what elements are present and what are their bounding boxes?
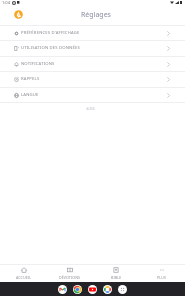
button[interactable]: Chrome [73,285,82,294]
staticText: NOTIFICATIONS [21,61,55,67]
button[interactable]: BIBLE [93,265,139,282]
staticText: DÉVOTIONS [59,275,81,280]
button[interactable]: All apps [118,285,127,294]
staticText: ACCUEIL [16,275,32,280]
staticText: UTILISATION DES DONNÉES [21,45,80,51]
button[interactable]: Logo [14,10,23,19]
button[interactable]: Photos [103,285,112,294]
staticText: LANGUE [21,92,39,98]
button[interactable]: PRÉFÉRENCES D'AFFICHAGE [0,26,185,40]
button[interactable]: YouTube [88,285,97,294]
staticText: BIBLE [111,275,122,280]
button[interactable]: DÉVOTIONS [47,265,93,282]
staticText: 1:04 [2,0,10,5]
staticText: PRÉFÉRENCES D'AFFICHAGE [21,30,80,36]
button[interactable]: Gmail [58,285,67,294]
button[interactable]: NOTIFICATIONS [0,57,185,71]
staticText: 4.3.5 [0,106,183,111]
staticText: PLUS [157,275,167,280]
button[interactable]: RAPPELS [0,72,185,86]
button[interactable]: ACCUEIL [0,265,47,282]
staticText: RAPPELS [21,76,40,82]
button[interactable]: PLUS [139,265,185,282]
button[interactable]: LANGUE [0,88,185,102]
button[interactable]: UTILISATION DES DONNÉES [0,41,185,55]
staticText: Réglages [81,10,111,20]
